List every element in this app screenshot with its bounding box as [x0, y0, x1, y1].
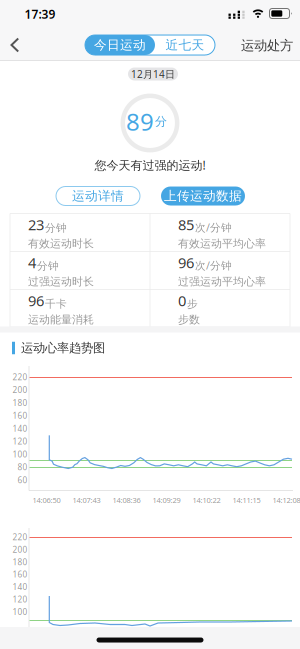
staticText: 14:07:43 [72, 495, 100, 505]
staticText: 运动处方 [241, 37, 293, 54]
staticText: 80 [17, 461, 27, 473]
staticText: 140 [12, 423, 27, 434]
button[interactable]: 运动详情 [56, 186, 140, 205]
staticText: 今日运动 [94, 37, 146, 53]
staticText: 14:06:50 [32, 495, 60, 505]
staticText: 14:08:36 [112, 495, 140, 505]
staticText: 0 [178, 291, 186, 311]
staticText: 160 [12, 410, 27, 421]
staticText: 步数 [178, 313, 200, 326]
staticText: 220 [12, 371, 27, 383]
staticText: 次/分钟 [195, 258, 232, 273]
staticText: 200 [12, 384, 27, 395]
staticText: 上传运动数据 [164, 188, 242, 204]
staticText: 85 [178, 215, 194, 235]
staticText: 次/分钟 [195, 220, 232, 235]
staticText: 过强运动时长 [28, 275, 94, 288]
staticText: 过强运动平均心率 [178, 275, 266, 288]
staticText: 160 [12, 569, 27, 580]
staticText: 步 [187, 297, 198, 311]
staticText: 近七天 [165, 37, 204, 53]
staticText: 100 [12, 606, 27, 617]
staticText: 96 [28, 291, 44, 311]
staticText: 14:10:22 [192, 495, 220, 505]
staticText: 23 [28, 215, 44, 235]
button[interactable]: Back [10, 37, 20, 52]
staticText: 有效运动时长 [28, 237, 94, 250]
staticText: 100 [12, 449, 27, 460]
staticText: 14:09:29 [152, 495, 180, 505]
button[interactable]: 12月14日 [128, 67, 178, 80]
button[interactable]: 运动处方 [233, 38, 293, 52]
staticText: 千卡 [45, 297, 67, 311]
staticText: 运动心率趋势图 [21, 340, 105, 356]
staticText: 分 [155, 114, 167, 129]
button[interactable]: 今日运动 [85, 35, 155, 55]
staticText: 140 [12, 581, 27, 592]
staticText: 89 [126, 105, 154, 138]
staticText: 4 [28, 253, 36, 273]
button[interactable]: 近七天 [155, 35, 215, 55]
staticText: 180 [12, 397, 27, 408]
staticText: 有效运动平均心率 [178, 237, 266, 250]
staticText: 运动详情 [72, 188, 124, 204]
staticText: 200 [12, 544, 27, 555]
staticText: 您今天有过强的运动! [94, 157, 205, 173]
button[interactable]: 上传运动数据 [161, 186, 245, 205]
staticText: 14:12:08 [272, 495, 300, 505]
staticText: 60 [17, 474, 27, 486]
staticText: 120 [12, 594, 27, 605]
staticText: 12月14日 [131, 67, 175, 81]
staticText: 运动能量消耗 [28, 313, 94, 326]
staticText: 96 [178, 253, 194, 273]
staticText: 180 [12, 556, 27, 568]
staticText: 17:39 [24, 6, 55, 22]
staticText: 14:11:15 [232, 495, 260, 505]
staticText: 220 [12, 531, 27, 543]
staticText: 分钟 [45, 221, 67, 235]
staticText: 分钟 [37, 259, 59, 273]
staticText: 120 [12, 436, 27, 447]
